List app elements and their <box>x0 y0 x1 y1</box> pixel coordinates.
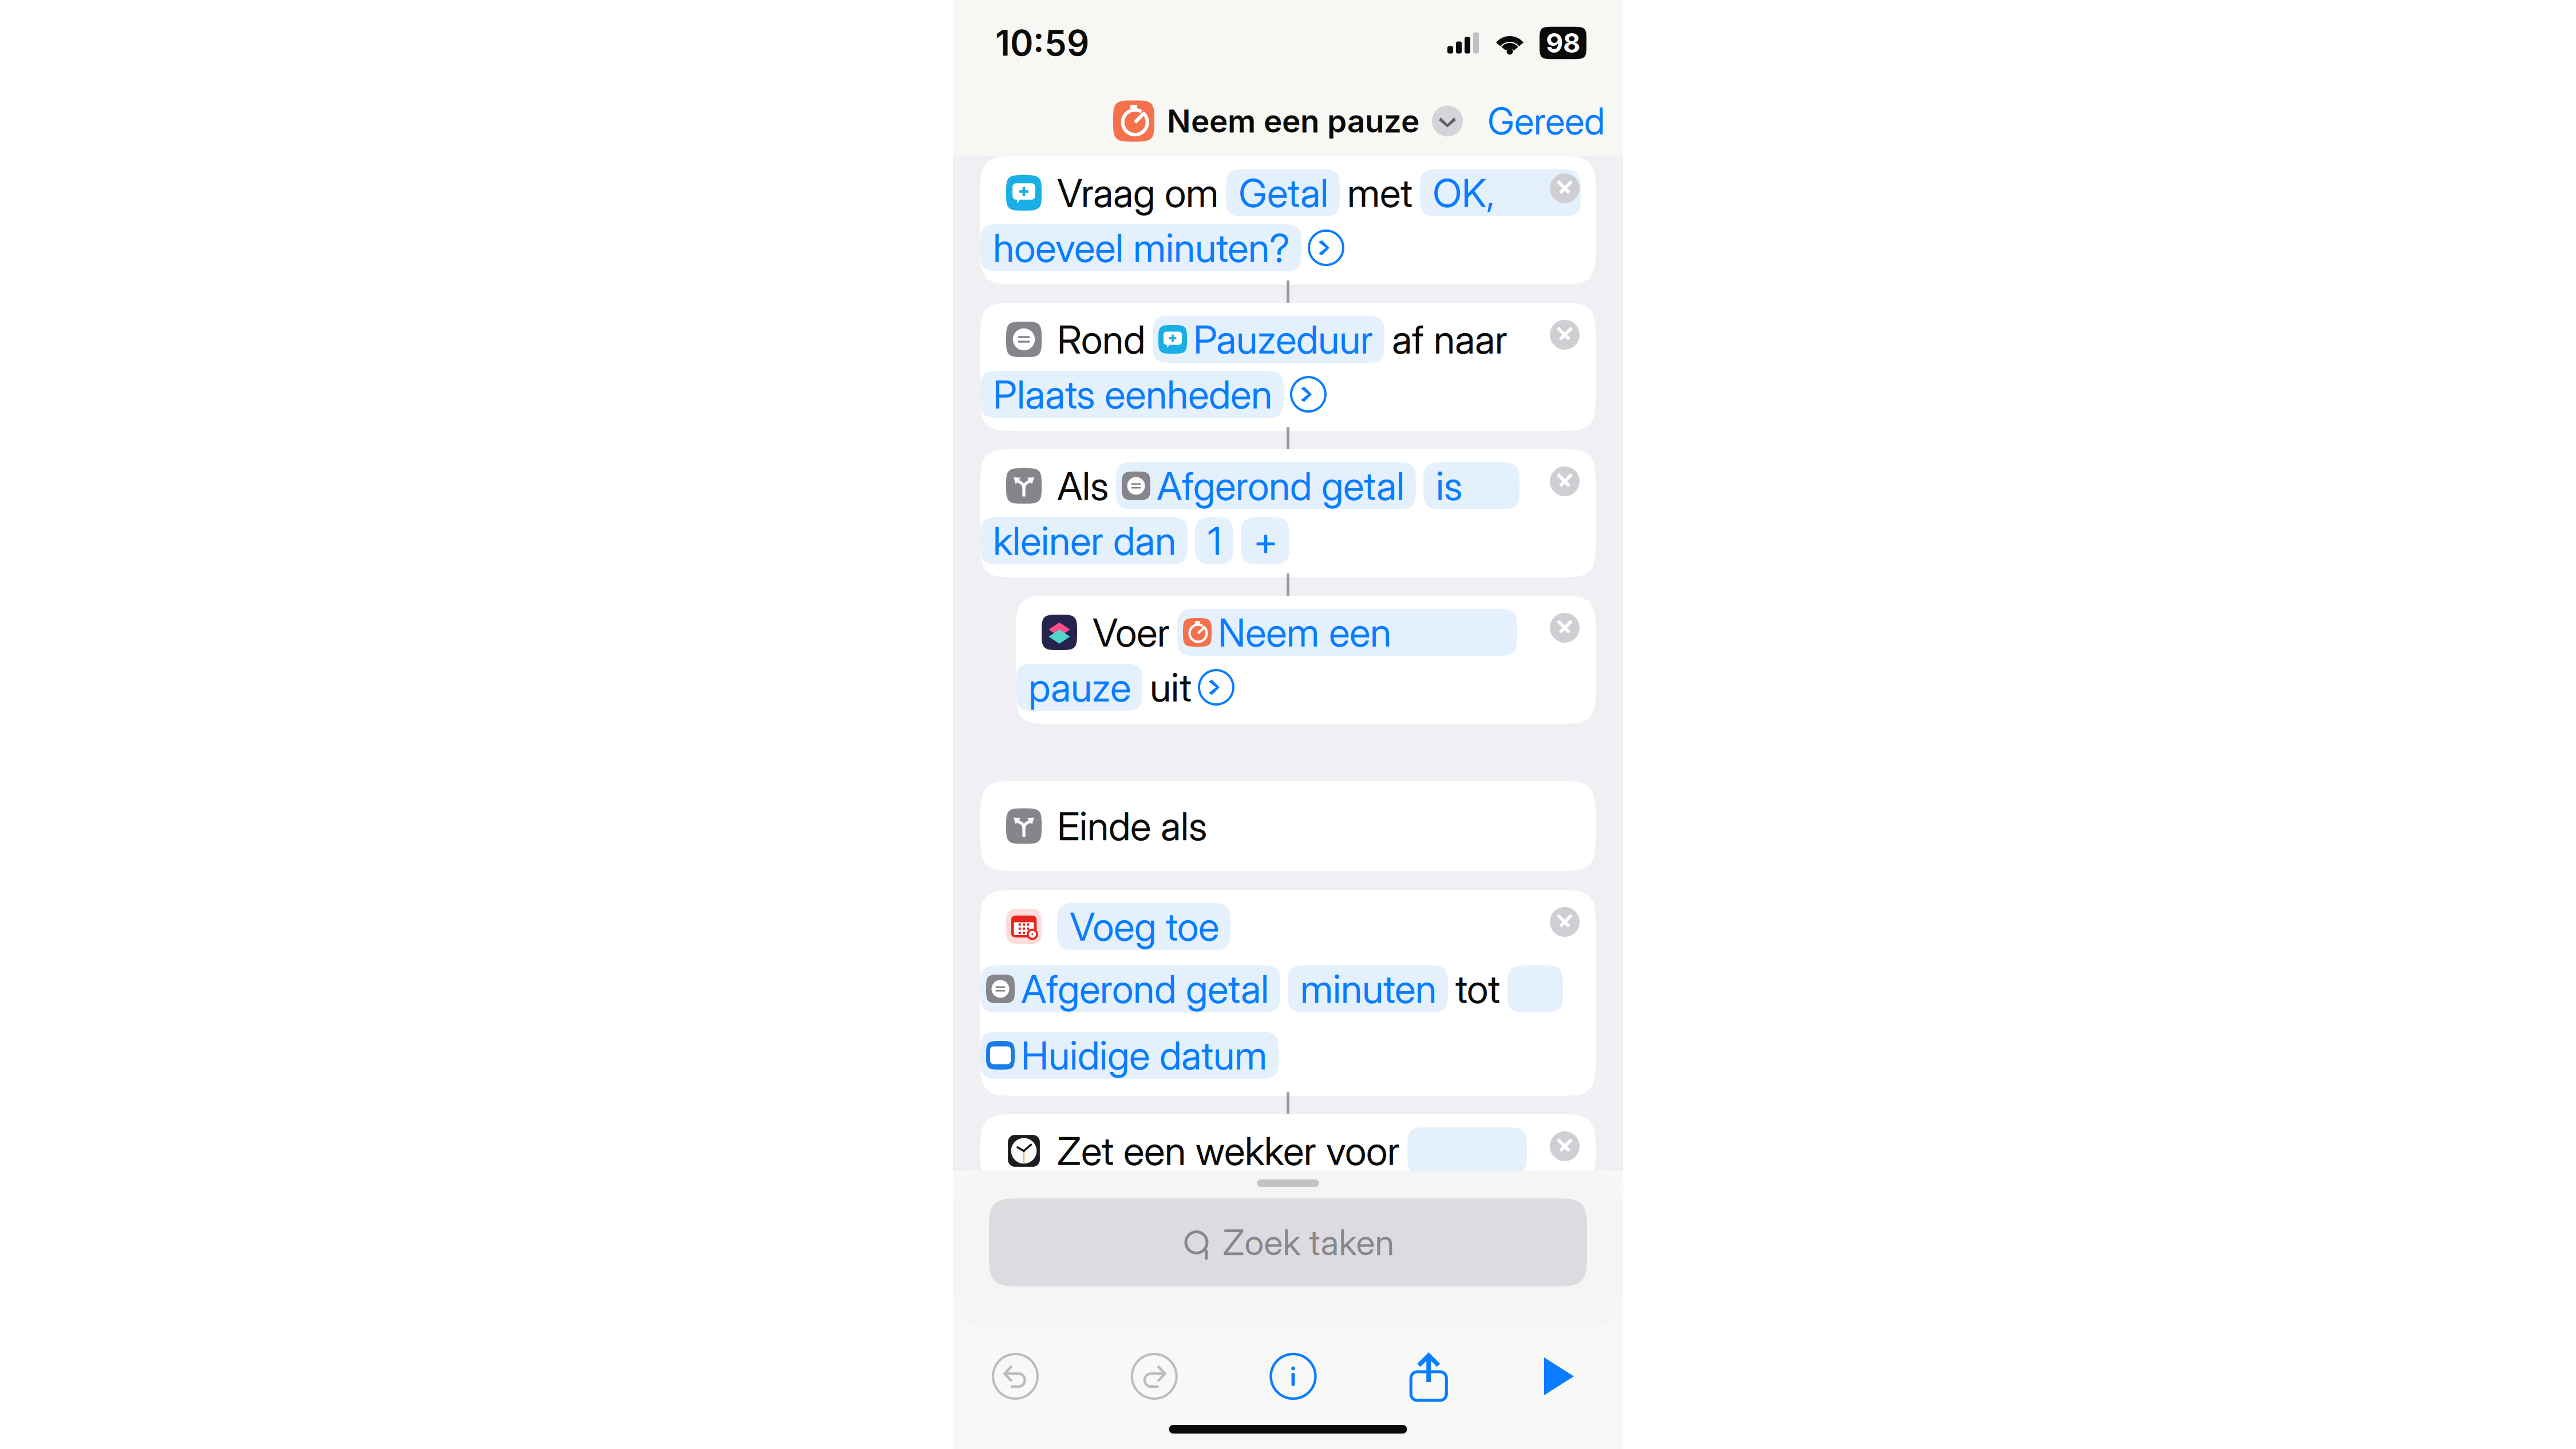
button[interactable]: Voer <box>1016 596 1596 724</box>
staticText: Afgerond getal <box>1021 965 1269 1012</box>
staticText: Neem een <box>1218 609 1391 656</box>
staticText: is <box>1436 462 1462 509</box>
staticText: Gereed <box>1487 99 1605 143</box>
staticText: 98 <box>1546 27 1580 59</box>
staticText: Zoek taken <box>1223 1221 1394 1264</box>
button[interactable]: Verwijder actie <box>1550 320 1580 350</box>
button[interactable]: Opnieuw <box>1118 1340 1190 1412</box>
button[interactable]: Voer uit <box>1528 1344 1590 1409</box>
staticText: Huidige datum <box>1021 1032 1267 1079</box>
staticText <box>1420 1127 1430 1174</box>
button[interactable]: Voeg toe <box>980 890 1596 1096</box>
button[interactable]: Verwijder actie <box>1550 613 1580 643</box>
staticText: Voer <box>1093 609 1170 656</box>
button[interactable]: Verwijder actie <box>1550 907 1580 937</box>
staticText: Afgerond getal <box>1157 462 1404 509</box>
button[interactable]: Verwijder actie <box>1550 466 1580 496</box>
staticText: met <box>1347 169 1412 216</box>
button[interactable]: Verwijder actie <box>1550 173 1580 203</box>
button[interactable]: Vraag om <box>980 156 1596 284</box>
staticText: pauze <box>1028 664 1131 711</box>
button[interactable]: Ongedaan maken <box>979 1340 1051 1412</box>
staticText: minuten <box>1300 965 1437 1012</box>
staticText: Als <box>1057 462 1109 509</box>
staticText: Voeg toe <box>1070 903 1219 950</box>
button[interactable]: Info <box>1257 1340 1329 1412</box>
staticText: Getal <box>1238 169 1328 216</box>
staticText: 1 <box>1208 517 1222 564</box>
staticText: uit <box>1150 664 1192 711</box>
staticText: Vraag om <box>1057 169 1218 216</box>
button[interactable]: Neem een pauze <box>1113 100 1463 142</box>
button[interactable]: Einde als <box>980 781 1596 871</box>
button[interactable]: Zet een wekker voor <box>980 1114 1596 1187</box>
staticText: Neem een pauze <box>1167 102 1419 140</box>
button[interactable]: Deel <box>1396 1339 1461 1414</box>
staticText: 10:59 <box>995 22 1089 64</box>
staticText: Pauzeduur <box>1193 316 1373 363</box>
button[interactable]: Gereed <box>1481 99 1612 143</box>
button[interactable]: Verwijder actie <box>1550 1131 1580 1161</box>
staticText: Plaats eenheden <box>993 371 1272 418</box>
button[interactable]: Zoek taken <box>989 1198 1587 1286</box>
button[interactable]: Als <box>980 449 1596 577</box>
staticText: kleiner dan <box>993 517 1176 564</box>
staticText: OK, <box>1433 169 1495 216</box>
staticText: af naar <box>1392 316 1507 363</box>
button[interactable]: Rond <box>980 303 1596 431</box>
staticText: Einde als <box>1057 803 1207 850</box>
staticText: Rond <box>1057 316 1145 363</box>
staticText: hoeveel minuten? <box>993 224 1290 271</box>
staticText: Zet een wekker voor <box>1057 1127 1400 1174</box>
staticText: tot <box>1455 965 1500 1012</box>
staticText: + <box>1253 517 1278 564</box>
